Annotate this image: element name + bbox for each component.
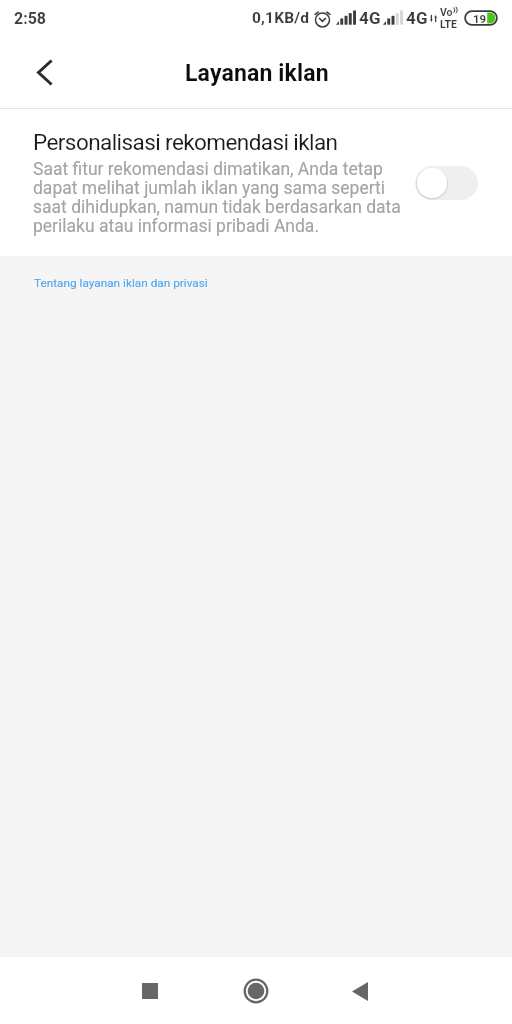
- staticText: Tentang layanan iklan dan privasi: [34, 276, 208, 290]
- staticText: 19: [473, 12, 487, 25]
- staticText: Layanan iklan: [185, 60, 329, 87]
- staticText: 2:58: [14, 9, 47, 28]
- staticText: 4G: [359, 8, 381, 28]
- button[interactable]: Back: [330, 959, 394, 1023]
- button[interactable]: Home: [224, 959, 288, 1023]
- button[interactable]: Toggle ad personalisation: [415, 166, 478, 200]
- staticText: Saat fitur rekomendasi dimatikan, Anda t…: [33, 159, 405, 236]
- staticText: LTE: [440, 18, 457, 30]
- staticText: Vo: [440, 6, 453, 18]
- button[interactable]: Tentang layanan iklan dan privasi: [34, 276, 208, 290]
- button[interactable]: Recents: [118, 959, 182, 1023]
- button[interactable]: Personalisasi rekomendasi iklan: [0, 109, 512, 256]
- staticText: Personalisasi rekomendasi iklan: [33, 129, 338, 155]
- staticText: 0,1KB/d: [252, 9, 310, 27]
- staticText: 4G: [406, 8, 428, 28]
- button[interactable]: Back: [20, 48, 68, 96]
